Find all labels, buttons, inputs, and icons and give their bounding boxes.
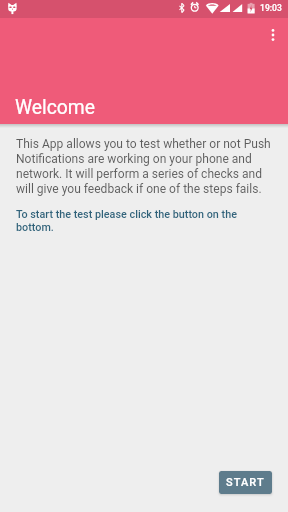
staticText: 19:03	[260, 3, 282, 13]
staticText: START	[226, 476, 265, 489]
staticText: To start the test please click the butto…	[16, 208, 272, 233]
button[interactable]: More options	[259, 21, 287, 49]
staticText: This App allows you to test whether or n…	[16, 137, 272, 196]
button[interactable]: START	[219, 471, 272, 494]
staticText: Welcome	[15, 96, 96, 119]
